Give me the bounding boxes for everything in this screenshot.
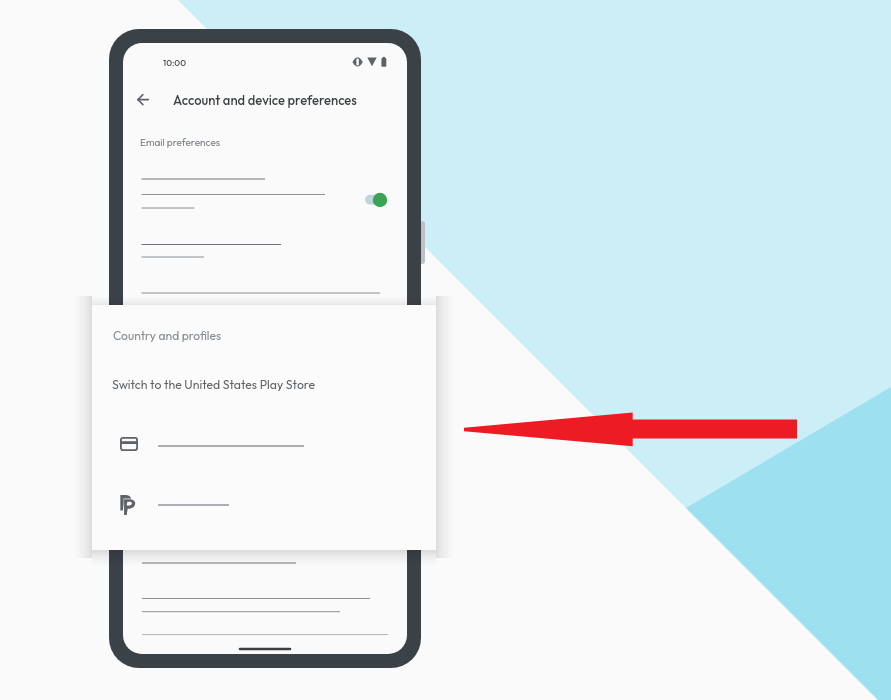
button[interactable]: Preference row [131, 588, 405, 622]
button[interactable]: Preference row [131, 550, 405, 585]
button[interactable]: Subscription preference row [131, 232, 405, 270]
staticText: Switch to the United States Play Store [112, 377, 316, 392]
button[interactable]: Credit card payment method [112, 428, 312, 462]
button[interactable]: Notification preference row [131, 170, 405, 222]
staticText: Country and profiles [113, 328, 222, 343]
button[interactable]: Back [128, 85, 157, 114]
button[interactable]: Home [232, 641, 298, 654]
button[interactable]: Preference row [131, 280, 405, 305]
button[interactable]: Email notifications toggle, on [363, 189, 389, 211]
staticText: 10:00 [163, 57, 186, 68]
button[interactable]: PayPal payment method [112, 488, 312, 522]
staticText: Email preferences [140, 136, 221, 149]
staticText: Account and device preferences [173, 92, 357, 108]
